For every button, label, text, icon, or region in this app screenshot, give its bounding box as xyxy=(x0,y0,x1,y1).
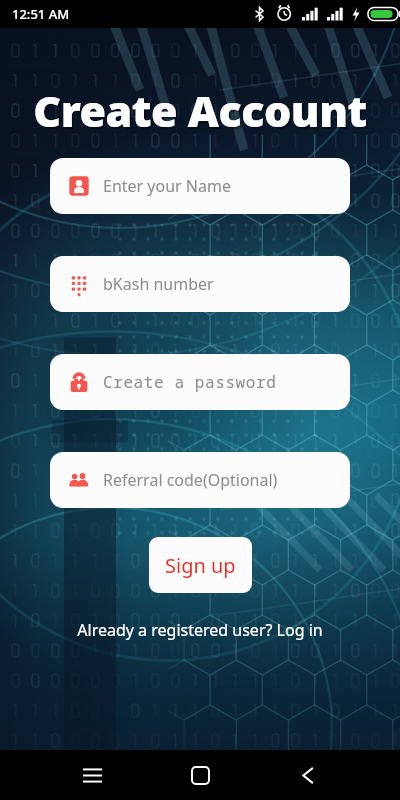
button[interactable]: Create a password xyxy=(50,354,350,410)
staticText: Already a registered user? Log in xyxy=(77,619,323,641)
staticText: Enter your Name xyxy=(103,175,231,197)
staticText: bKash number xyxy=(103,273,214,295)
staticText: Create a password xyxy=(103,371,277,393)
button[interactable]: Referral code(Optional) xyxy=(50,452,350,508)
staticText: Create Account xyxy=(33,81,367,133)
staticText: Sign up xyxy=(165,552,236,579)
staticText: Referral code(Optional) xyxy=(103,469,278,491)
button[interactable]: bKash number xyxy=(50,256,350,312)
staticText: Create Account xyxy=(35,83,369,135)
button[interactable]: Enter your Name xyxy=(50,158,350,214)
button[interactable]: Home xyxy=(176,751,224,799)
staticText: 12:51 AM xyxy=(12,5,70,23)
button[interactable]: Sign up xyxy=(149,537,252,593)
button[interactable]: Back xyxy=(284,751,332,799)
button[interactable]: Recents xyxy=(68,751,116,799)
button[interactable]: Already a registered user? Log in xyxy=(40,619,360,641)
